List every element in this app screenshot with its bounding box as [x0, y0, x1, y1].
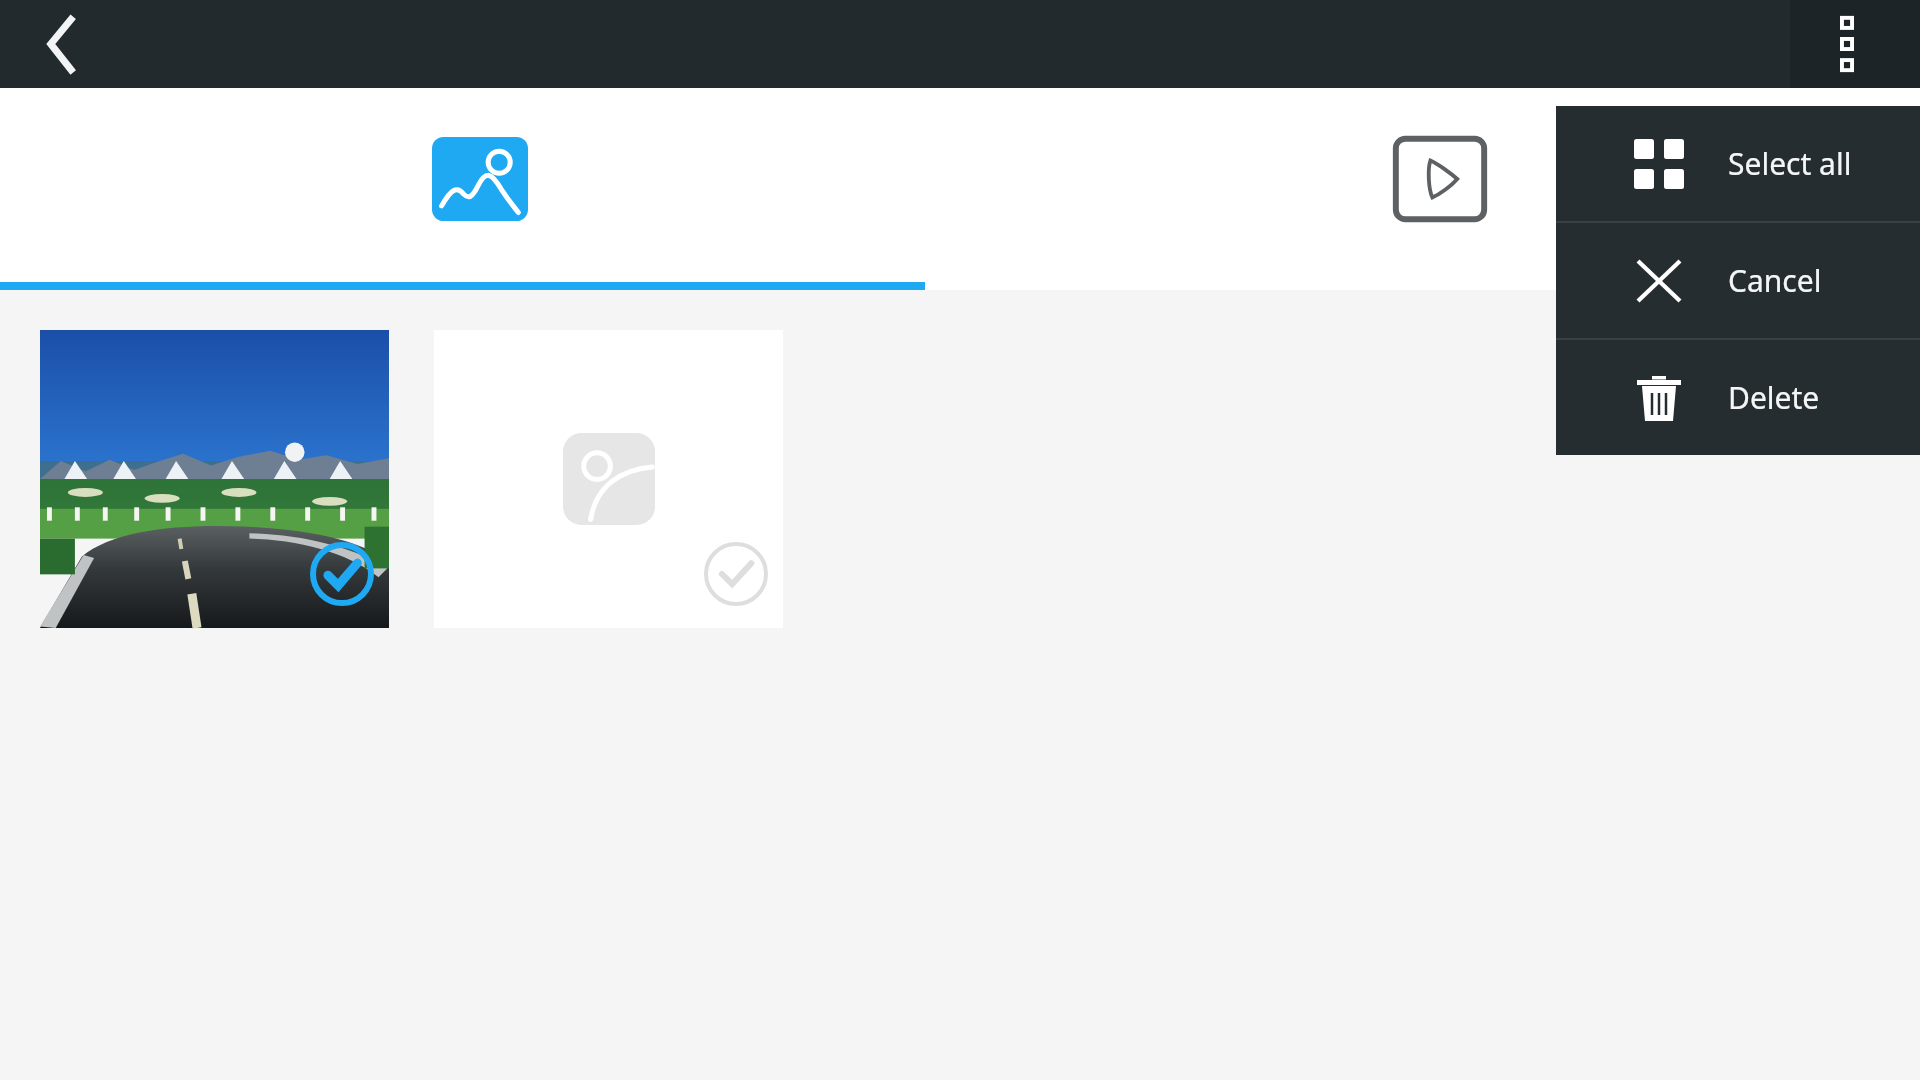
staticText: Delete: [1728, 377, 1820, 418]
button[interactable]: Back: [30, 11, 96, 77]
staticText: Select all: [1728, 143, 1852, 184]
button[interactable]: Delete: [1556, 340, 1920, 455]
button[interactable]: Selected photo: [40, 330, 389, 628]
button[interactable]: More options: [1814, 11, 1880, 77]
button[interactable]: Photo placeholder: [434, 330, 783, 628]
button[interactable]: Cancel: [1556, 223, 1920, 338]
button[interactable]: Select all: [1556, 106, 1920, 221]
button[interactable]: Photos tab: [0, 88, 960, 290]
staticText: Cancel: [1728, 260, 1822, 301]
button[interactable]: Videos tab: [960, 88, 1920, 290]
